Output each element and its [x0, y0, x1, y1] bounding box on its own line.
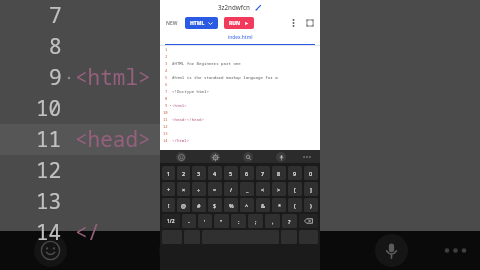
button[interactable]: % [224, 198, 238, 212]
staticText: 5 [165, 75, 168, 80]
button[interactable]: " [214, 214, 229, 228]
staticText: 11 [163, 117, 168, 122]
staticText: 4 [213, 170, 217, 177]
staticText: #HTML for Beginners part one [172, 61, 241, 67]
button[interactable]: Rename project [254, 3, 262, 11]
staticText: 12 [163, 124, 168, 129]
button[interactable]: More keyboard options [297, 150, 317, 163]
button[interactable]: More options [288, 17, 299, 28]
button[interactable]: 5 [224, 166, 238, 180]
button[interactable]: HTML [185, 17, 218, 29]
staticText: 9 [293, 170, 297, 177]
staticText: 10 [36, 94, 62, 123]
staticText: > [277, 186, 281, 193]
button[interactable]: Voice input [375, 234, 408, 267]
button[interactable]: × [177, 182, 190, 196]
staticText: ' [204, 218, 206, 225]
button[interactable]: Search [231, 150, 264, 163]
button[interactable]: Voice input [264, 150, 297, 163]
button[interactable]: 1 [162, 166, 175, 180]
staticText: 12 [36, 156, 62, 185]
button[interactable]: ] [304, 182, 318, 196]
button[interactable]: 1/2 [162, 214, 180, 228]
button[interactable]: ! [162, 198, 175, 212]
button[interactable]: # [192, 198, 206, 212]
button[interactable]: Emoji [164, 150, 198, 163]
staticText: < [261, 186, 265, 193]
button[interactable]: 2 [177, 166, 190, 180]
staticText: 2 [165, 54, 168, 59]
staticText: @ [181, 202, 186, 209]
staticText: </html> [75, 218, 160, 247]
staticText: 8 [49, 32, 62, 61]
staticText: ; [255, 218, 257, 225]
button[interactable]: : [231, 214, 246, 228]
button[interactable]: + [162, 182, 175, 196]
button[interactable]: ( [288, 198, 302, 212]
button[interactable]: Fullscreen [304, 17, 315, 28]
staticText: ] [310, 186, 312, 193]
button[interactable]: _ [240, 182, 254, 196]
button[interactable]: > [272, 182, 286, 196]
button[interactable]: 0 [304, 166, 318, 180]
button[interactable]: $ [208, 198, 222, 212]
staticText: 2 [182, 170, 186, 177]
button[interactable]: ? [282, 214, 297, 228]
staticText: 8 [277, 170, 281, 177]
button[interactable]: ) [304, 198, 318, 212]
button[interactable]: ; [248, 214, 263, 228]
button[interactable]: , [265, 214, 280, 228]
button[interactable]: @ [177, 198, 190, 212]
staticText: <html> [172, 103, 187, 109]
button[interactable]: 8 [272, 166, 286, 180]
button[interactable]: 9 [288, 166, 302, 180]
button[interactable]: Backspace [299, 214, 318, 228]
button[interactable]: Keyboard settings [198, 150, 231, 163]
button[interactable]: 7 [256, 166, 270, 180]
button[interactable]: < [256, 182, 270, 196]
staticText: * [278, 202, 281, 209]
staticText: 1 [165, 47, 168, 52]
staticText: 0 [309, 170, 313, 177]
button[interactable]: * [272, 198, 286, 212]
button[interactable]: NEW [166, 17, 178, 29]
staticText: 7 [261, 170, 265, 177]
staticText: 7 [165, 89, 168, 94]
button[interactable]: Settings [159, 234, 192, 267]
staticText: ^ [245, 202, 249, 209]
staticText: 8 [165, 96, 168, 101]
button[interactable]: - [182, 214, 196, 228]
button[interactable]: More [444, 247, 467, 254]
staticText: 9 [49, 63, 62, 92]
button[interactable]: = [208, 182, 222, 196]
staticText: <head></head> [172, 117, 204, 123]
staticText: </html> [172, 138, 190, 144]
button[interactable]: [ [288, 182, 302, 196]
staticText: <head></he [75, 125, 160, 154]
staticText: 1 [167, 170, 171, 177]
button[interactable]: & [256, 198, 270, 212]
button[interactable]: ^ [240, 198, 254, 212]
staticText: ÷ [197, 186, 201, 193]
button[interactable]: index.html [165, 32, 315, 45]
staticText: / [230, 186, 233, 193]
button[interactable]: Emoji [34, 234, 67, 267]
staticText: 14 [36, 218, 62, 247]
button[interactable]: ' [198, 214, 212, 228]
button[interactable]: / [224, 182, 238, 196]
button[interactable]: 6 [240, 166, 254, 180]
button[interactable]: 3 [192, 166, 206, 180]
staticText: " [220, 218, 223, 225]
staticText: <html> [75, 63, 151, 92]
staticText: index.html [228, 34, 253, 41]
staticText: $ [213, 202, 217, 209]
button[interactable]: ÷ [192, 182, 206, 196]
staticText: , [272, 218, 274, 225]
button[interactable]: RUN [224, 17, 254, 29]
button[interactable]: 4 [208, 166, 222, 180]
